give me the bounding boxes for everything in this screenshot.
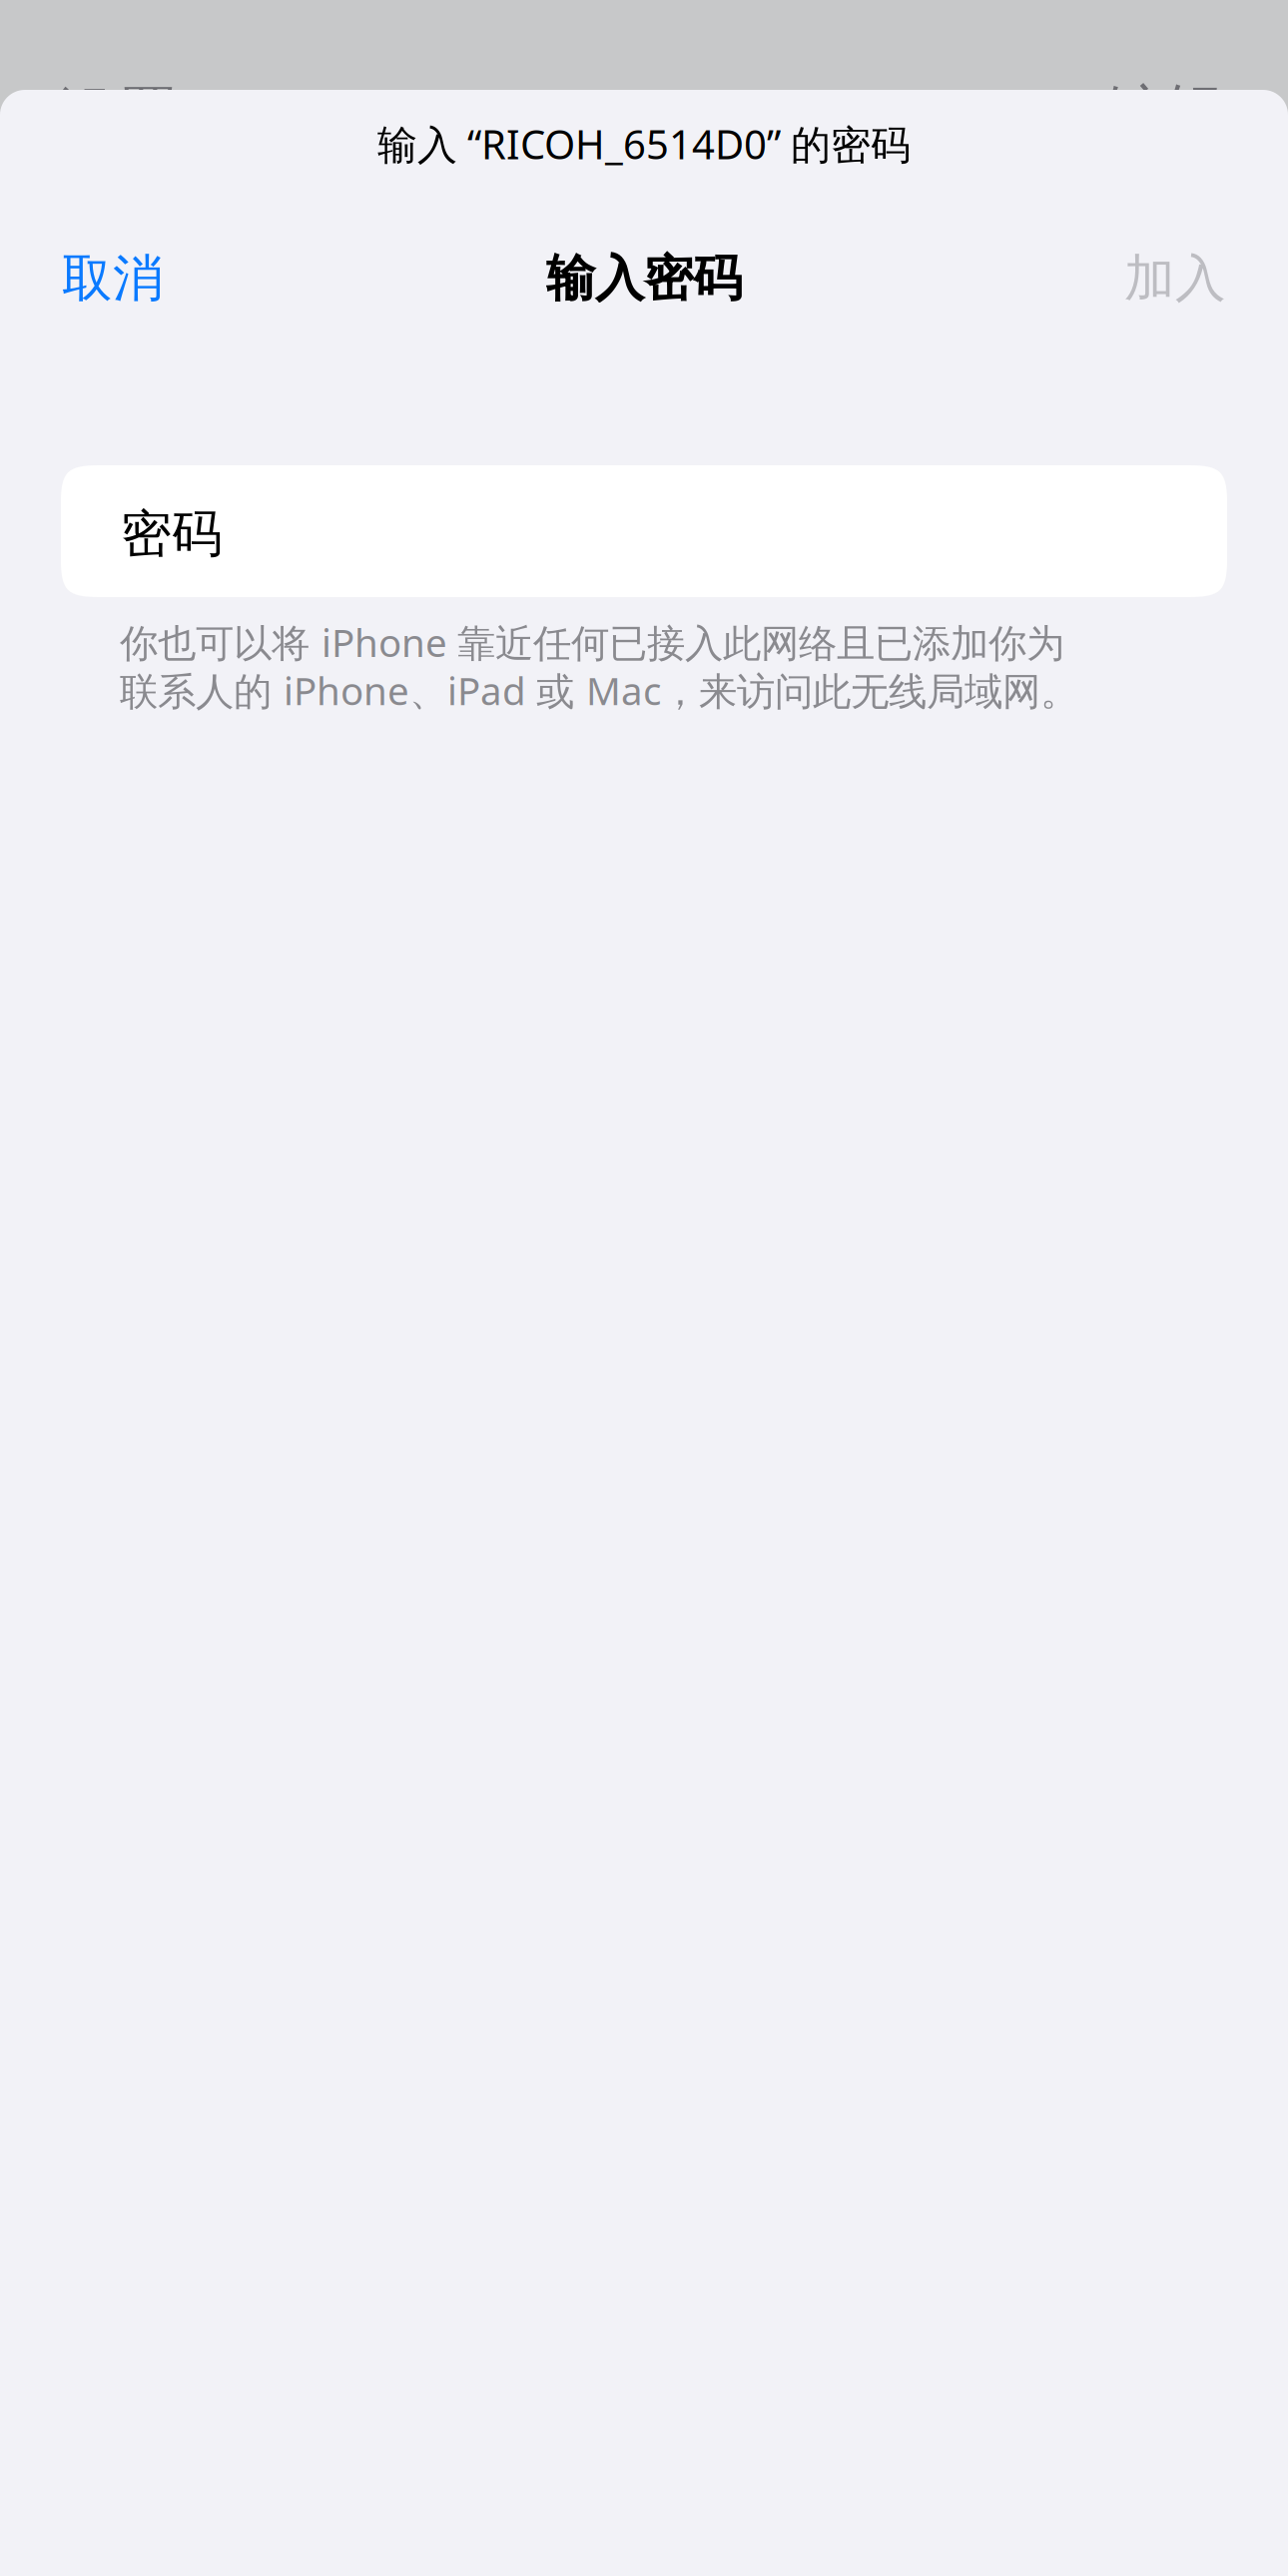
staticText: 加入: [1124, 248, 1226, 310]
staticText: 输入密码: [546, 248, 742, 309]
staticText: 你也可以将 iPhone 靠近任何已接入此网络且已添加你为联系人的 iPhone…: [120, 616, 1078, 716]
staticText: 输入 “RICOH_6514D0” 的密码: [377, 117, 911, 170]
staticText: 密码: [121, 503, 223, 565]
button[interactable]: 密码: [61, 465, 1227, 597]
button[interactable]: 取消: [62, 254, 164, 304]
staticText: 取消: [62, 248, 164, 310]
staticText: ‹ 设置: [22, 73, 179, 154]
staticText: 编辑: [1104, 76, 1226, 151]
button[interactable]: 加入: [1124, 254, 1226, 304]
